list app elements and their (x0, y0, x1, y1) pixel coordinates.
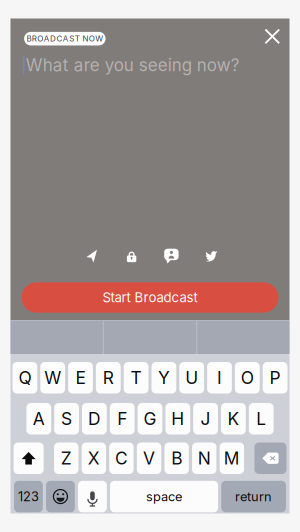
staticText: BROADCAST NOW (26, 34, 103, 43)
staticText: D (88, 408, 101, 429)
button[interactable]: F (110, 403, 135, 434)
staticText: P (270, 367, 281, 388)
staticText: Q (18, 367, 31, 388)
button[interactable]: I (207, 362, 232, 393)
staticText: space (146, 489, 182, 504)
button[interactable]: N (192, 442, 216, 474)
staticText: N (198, 448, 211, 469)
staticText: What are you seeing now? (26, 55, 240, 75)
button[interactable]: A (26, 403, 51, 434)
button[interactable]: T (124, 362, 148, 393)
button[interactable]: C (109, 442, 134, 474)
staticText: X (88, 448, 100, 469)
button[interactable]: U (179, 362, 204, 393)
button[interactable]: space (110, 481, 218, 512)
button[interactable]: Chat (158, 248, 184, 264)
button[interactable]: return (221, 481, 286, 512)
staticText: S (61, 408, 72, 429)
button[interactable]: Privacy (119, 248, 145, 264)
staticText: K (227, 408, 239, 429)
button[interactable]: K (221, 403, 246, 434)
staticText: 123 (18, 489, 39, 504)
button[interactable]: J (193, 403, 218, 434)
button[interactable]: W (40, 362, 65, 393)
staticText: J (201, 408, 211, 429)
button[interactable]: B (164, 442, 189, 474)
button[interactable]: Start Broadcast (21, 282, 278, 313)
button[interactable]: E (68, 362, 93, 393)
staticText: M (224, 448, 240, 469)
button[interactable]: BROADCAST NOW (24, 32, 106, 45)
staticText: H (171, 408, 184, 429)
button[interactable]: Delete (254, 442, 286, 474)
staticText: V (143, 448, 155, 469)
button[interactable]: P (263, 362, 287, 393)
staticText: W (44, 367, 61, 388)
staticText: C (115, 448, 128, 469)
button[interactable]: Close (260, 24, 285, 49)
staticText: T (131, 367, 142, 388)
staticText: F (117, 408, 127, 429)
button[interactable]: Shift (14, 442, 44, 474)
button[interactable]: G (138, 403, 162, 434)
button[interactable]: L (249, 403, 274, 434)
button[interactable]: O (235, 362, 260, 393)
button[interactable]: Y (151, 362, 176, 393)
button[interactable]: Emoji (46, 481, 75, 512)
staticText: L (256, 408, 266, 429)
button[interactable]: X (82, 442, 106, 474)
staticText: Start Broadcast (102, 289, 197, 305)
button[interactable]: V (137, 442, 161, 474)
button[interactable]: M (220, 442, 244, 474)
button[interactable]: S (54, 403, 79, 434)
button[interactable]: Location (79, 248, 105, 264)
button[interactable]: H (165, 403, 190, 434)
button[interactable]: Dictate (78, 481, 107, 512)
button[interactable]: D (82, 403, 107, 434)
staticText: Y (158, 367, 170, 388)
button[interactable]: R (96, 362, 121, 393)
staticText: G (143, 408, 156, 429)
staticText: E (75, 367, 85, 388)
staticText: O (241, 367, 254, 388)
button[interactable]: Z (54, 442, 78, 474)
button[interactable]: Q (12, 362, 37, 393)
staticText: U (185, 367, 198, 388)
staticText: Z (61, 448, 72, 469)
staticText: R (103, 367, 114, 388)
button[interactable]: 123 (14, 481, 43, 512)
staticText: return (235, 489, 272, 504)
staticText: B (171, 448, 182, 469)
staticText: I (217, 367, 222, 388)
staticText: A (33, 408, 45, 429)
button[interactable]: Share on Twitter (198, 248, 224, 264)
